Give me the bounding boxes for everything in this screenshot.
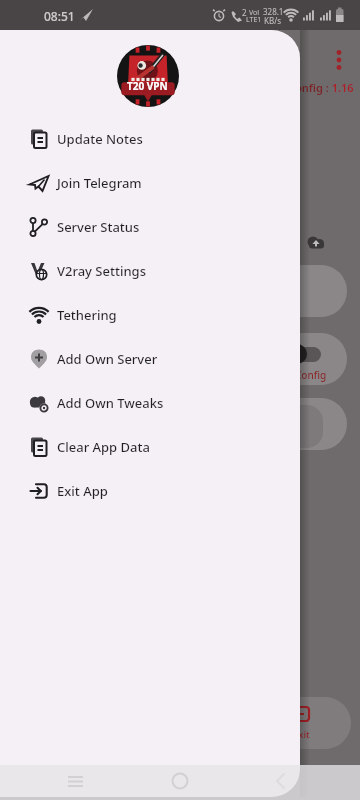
staticText: Add Own Server bbox=[57, 350, 158, 368]
staticText: Config : 1.16 bbox=[288, 80, 354, 95]
button[interactable]: V2ray Settings bbox=[0, 249, 300, 293]
staticText: Join Telegram bbox=[57, 174, 142, 192]
staticText: LTE1 bbox=[246, 15, 262, 25]
staticText: 2 bbox=[242, 7, 247, 18]
staticText: T20 VPN bbox=[127, 79, 168, 93]
button[interactable]: Update Notes bbox=[0, 117, 300, 161]
staticText: Config bbox=[295, 368, 327, 382]
staticText: Clear App Data bbox=[57, 438, 150, 456]
button[interactable]: Join Telegram bbox=[0, 161, 300, 205]
staticText: Add Own Tweaks bbox=[57, 394, 164, 412]
staticText: Vol bbox=[249, 8, 260, 18]
staticText: Update Notes bbox=[57, 130, 143, 148]
button[interactable]: Tethering bbox=[0, 293, 300, 337]
staticText: 08:51 bbox=[44, 8, 75, 24]
button[interactable]: Clear App Data bbox=[0, 425, 300, 469]
staticText: Server Status bbox=[57, 218, 140, 236]
button[interactable]: Add Own Tweaks bbox=[0, 381, 300, 425]
button[interactable]: Server Status bbox=[0, 205, 300, 249]
staticText: Exit App bbox=[57, 482, 108, 500]
staticText: Tethering bbox=[57, 306, 117, 324]
button[interactable]: Exit App bbox=[0, 469, 300, 513]
staticText: V2ray Settings bbox=[57, 262, 146, 280]
button[interactable]: Add Own Server bbox=[0, 337, 300, 381]
staticText: 328.1 bbox=[263, 6, 284, 17]
staticText: Exit bbox=[293, 728, 310, 741]
staticText: KB/s bbox=[264, 15, 281, 26]
